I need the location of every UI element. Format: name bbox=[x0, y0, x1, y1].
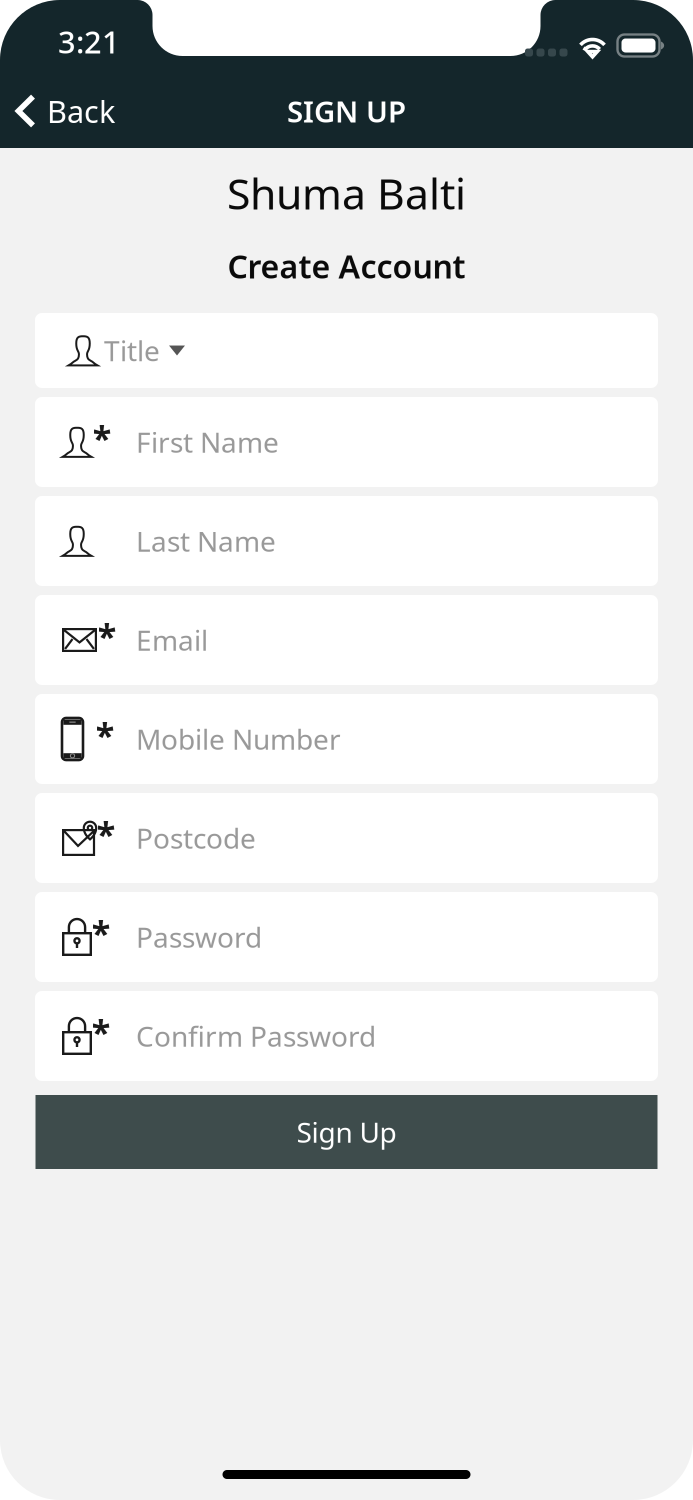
staticText: Create Account bbox=[227, 245, 465, 287]
staticText: Mobile Number bbox=[136, 720, 341, 758]
staticText: Sign Up bbox=[296, 1113, 396, 1151]
button[interactable]: * bbox=[35, 397, 658, 487]
button[interactable]: * bbox=[35, 793, 658, 883]
button[interactable]: * bbox=[35, 595, 658, 685]
staticText: * bbox=[91, 909, 110, 955]
button[interactable]: * bbox=[35, 892, 658, 982]
staticText: Confirm Password bbox=[136, 1017, 376, 1055]
staticText: Title bbox=[104, 332, 160, 369]
staticText: Back bbox=[47, 91, 115, 131]
button[interactable]: * bbox=[35, 694, 658, 784]
staticText: * bbox=[97, 612, 116, 658]
staticText: Shuma Balti bbox=[227, 165, 466, 221]
button[interactable]: Last Name bbox=[35, 496, 658, 586]
staticText: Postcode bbox=[136, 819, 256, 857]
button[interactable]: Sign Up bbox=[35, 1095, 658, 1169]
staticText: * bbox=[92, 414, 111, 460]
button[interactable]: * bbox=[35, 991, 658, 1081]
button[interactable]: Title bbox=[35, 313, 658, 388]
staticText: 3:21 bbox=[58, 21, 120, 62]
staticText: First Name bbox=[136, 423, 279, 461]
staticText: Email bbox=[136, 621, 208, 659]
staticText: Last Name bbox=[136, 522, 276, 560]
button[interactable]: Back bbox=[0, 74, 129, 148]
staticText: * bbox=[95, 711, 114, 757]
staticText: SIGN UP bbox=[287, 91, 406, 130]
staticText: Password bbox=[136, 918, 262, 956]
staticText: * bbox=[91, 1008, 110, 1054]
staticText: * bbox=[96, 810, 115, 856]
